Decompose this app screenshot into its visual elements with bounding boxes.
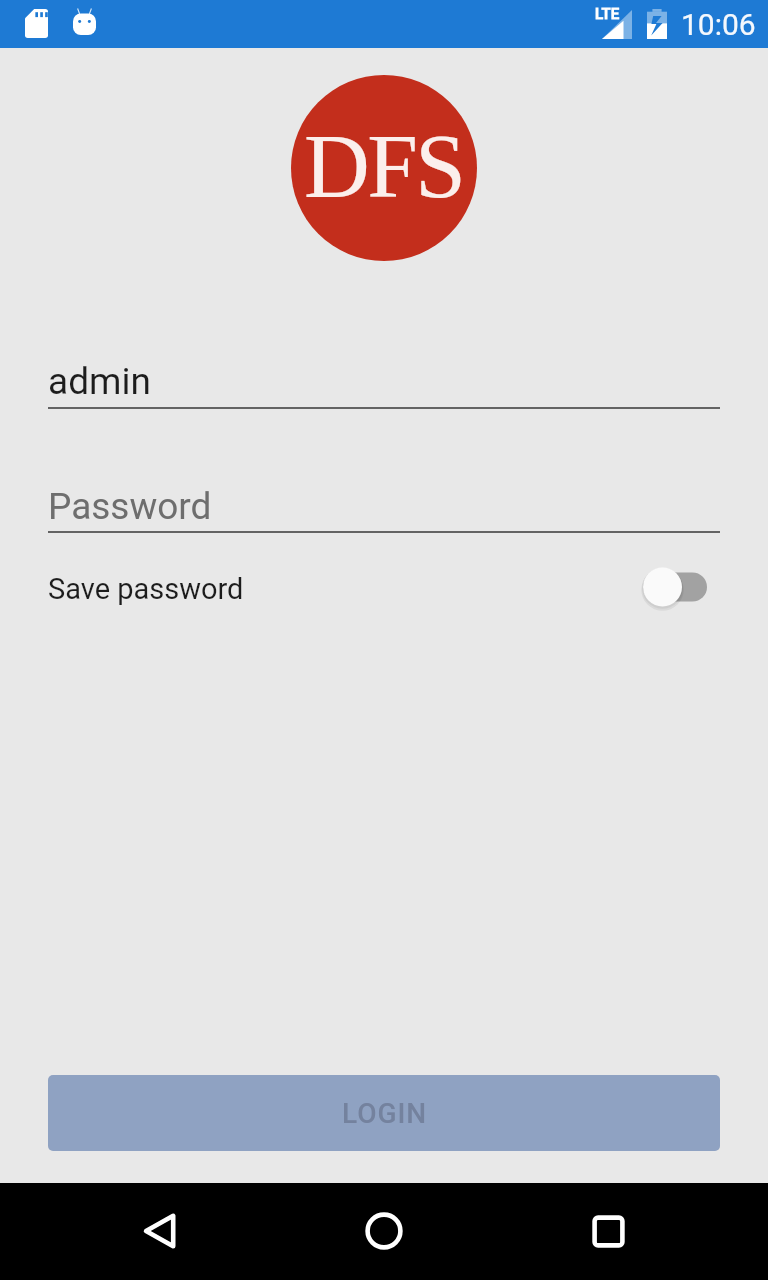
staticText: Save password — [48, 572, 244, 606]
staticText: LTE — [595, 5, 620, 23]
staticText: 10:06 — [681, 7, 756, 42]
staticText: DFS — [304, 116, 464, 217]
button[interactable]: Back — [128, 1199, 192, 1263]
button[interactable]: Save password — [48, 533, 720, 644]
staticText: admin — [48, 360, 151, 403]
button[interactable]: Home — [352, 1199, 416, 1263]
button[interactable]: Password field — [48, 480, 720, 533]
button[interactable]: LOGIN — [48, 1075, 720, 1151]
button[interactable]: Save password toggle, off — [630, 561, 720, 617]
staticText: LOGIN — [342, 1097, 427, 1130]
button[interactable]: Username field — [48, 355, 720, 409]
staticText: Password — [48, 485, 212, 528]
button[interactable]: Recent apps — [576, 1199, 640, 1263]
